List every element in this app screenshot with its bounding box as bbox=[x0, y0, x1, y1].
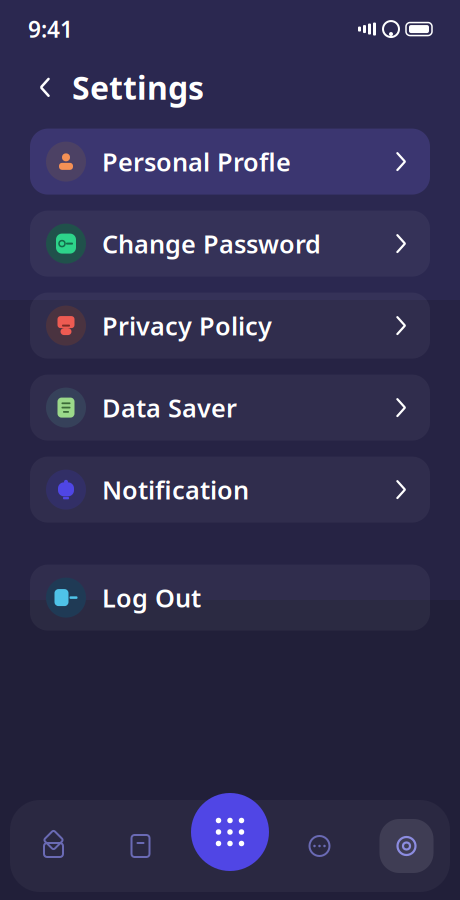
button[interactable]: Change Password bbox=[30, 211, 430, 277]
button[interactable]: Bookmarks bbox=[97, 833, 184, 859]
button[interactable]: Back bbox=[28, 70, 62, 104]
staticText: Change Password bbox=[102, 227, 321, 260]
button[interactable]: Log Out bbox=[30, 565, 430, 631]
button[interactable]: Messages bbox=[276, 833, 363, 859]
staticText: 9:41 bbox=[28, 14, 73, 44]
staticText: Data Saver bbox=[102, 391, 237, 424]
button[interactable]: Privacy Policy bbox=[30, 293, 430, 359]
staticText: Log Out bbox=[102, 581, 201, 614]
staticText: Privacy Policy bbox=[102, 309, 272, 342]
button[interactable]: Settings bbox=[363, 819, 450, 873]
staticText: Personal Profle bbox=[102, 145, 291, 178]
button[interactable]: Data Saver bbox=[30, 375, 430, 441]
button[interactable]: Apps bbox=[191, 793, 269, 871]
button[interactable]: Personal Profle bbox=[30, 129, 430, 195]
button[interactable]: Notification bbox=[30, 457, 430, 523]
staticText: Settings bbox=[72, 66, 204, 109]
staticText: Notification bbox=[102, 473, 249, 506]
button[interactable]: Home bbox=[10, 833, 97, 859]
